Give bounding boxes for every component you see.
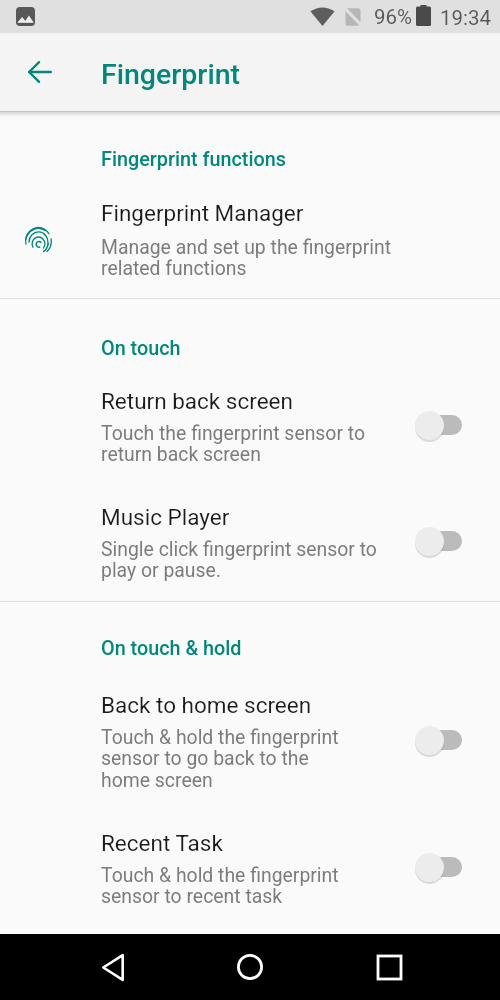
button[interactable]: Back xyxy=(89,943,137,991)
button[interactable]: Toggle off xyxy=(415,725,462,755)
button[interactable]: Home xyxy=(226,943,274,991)
staticText: Fingerprint Manager xyxy=(101,200,304,226)
button[interactable]: Fingerprint Manager xyxy=(0,200,500,300)
staticText: Single click fingerprint sensor to play … xyxy=(101,538,377,582)
staticText: On touch & hold xyxy=(101,637,242,660)
button[interactable]: Return back screen xyxy=(0,388,500,482)
button[interactable]: Toggle off xyxy=(415,852,462,882)
staticText: On touch xyxy=(101,337,181,360)
staticText: Recent Task xyxy=(101,830,223,856)
staticText: Touch & hold the fingerprint sensor to r… xyxy=(101,864,339,908)
staticText: 96% xyxy=(374,5,413,29)
button[interactable]: Back to home screen xyxy=(0,692,500,808)
staticText: Manage and set up the fingerprint relate… xyxy=(101,236,392,280)
staticText: Fingerprint functions xyxy=(101,148,286,171)
staticText: Back to home screen xyxy=(101,692,312,718)
button[interactable]: Recent apps xyxy=(365,943,413,991)
button[interactable]: Recent Task xyxy=(0,830,500,924)
button[interactable]: Back xyxy=(10,42,70,102)
staticText: Touch & hold the fingerprint sensor to g… xyxy=(101,726,339,792)
button[interactable]: Toggle off xyxy=(415,526,462,556)
staticText: 19:34 xyxy=(440,6,492,30)
button[interactable]: Toggle off xyxy=(415,410,462,440)
button[interactable]: Music Player xyxy=(0,504,500,598)
staticText: Music Player xyxy=(101,504,230,530)
staticText: Touch the fingerprint sensor to return b… xyxy=(101,422,366,466)
staticText: Return back screen xyxy=(101,388,293,414)
staticText: Fingerprint xyxy=(101,58,241,91)
